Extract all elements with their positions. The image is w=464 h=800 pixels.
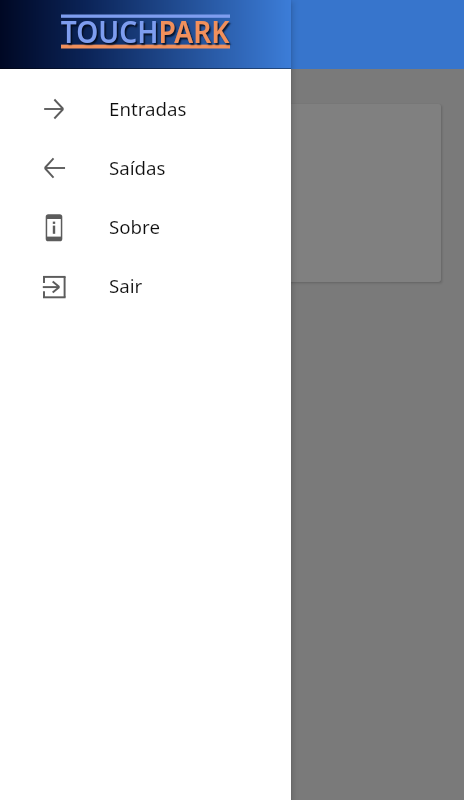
staticText: Saídas — [109, 155, 166, 180]
staticText: Sobre — [109, 214, 160, 239]
staticText: TOUCHPARK — [61, 11, 230, 52]
button[interactable]: Sobre — [0, 197, 291, 256]
button[interactable]: TOUCHPARK — [0, 0, 291, 69]
staticText: Sair — [109, 273, 143, 298]
button[interactable]: Sair — [0, 256, 291, 315]
staticText: Entradas — [109, 96, 187, 121]
button[interactable]: Fechar menu — [0, 69, 464, 800]
button[interactable]: Saídas — [0, 138, 291, 197]
button[interactable] — [23, 104, 441, 282]
button[interactable]: Entradas — [0, 79, 291, 138]
